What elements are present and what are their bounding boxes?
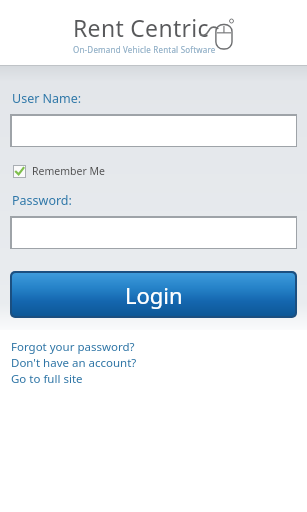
staticText: Login [125, 280, 183, 310]
button[interactable]: Go to full site [11, 371, 83, 387]
button[interactable]: Forgot your password? [11, 339, 135, 355]
button[interactable]: Don't have an account? [11, 355, 137, 371]
button[interactable]: Remember Me [10, 162, 111, 180]
button[interactable]: Login [12, 273, 295, 316]
staticText: Rent Centric [73, 12, 209, 43]
staticText: Go to full site [11, 371, 83, 387]
staticText: On-Demand Vehicle Rental Software [73, 44, 216, 55]
staticText: User Name: [12, 90, 82, 107]
staticText: Password: [12, 192, 72, 209]
staticText: Forgot your password? [11, 339, 135, 355]
staticText: Remember Me [32, 164, 105, 178]
staticText: Don't have an account? [11, 355, 137, 371]
